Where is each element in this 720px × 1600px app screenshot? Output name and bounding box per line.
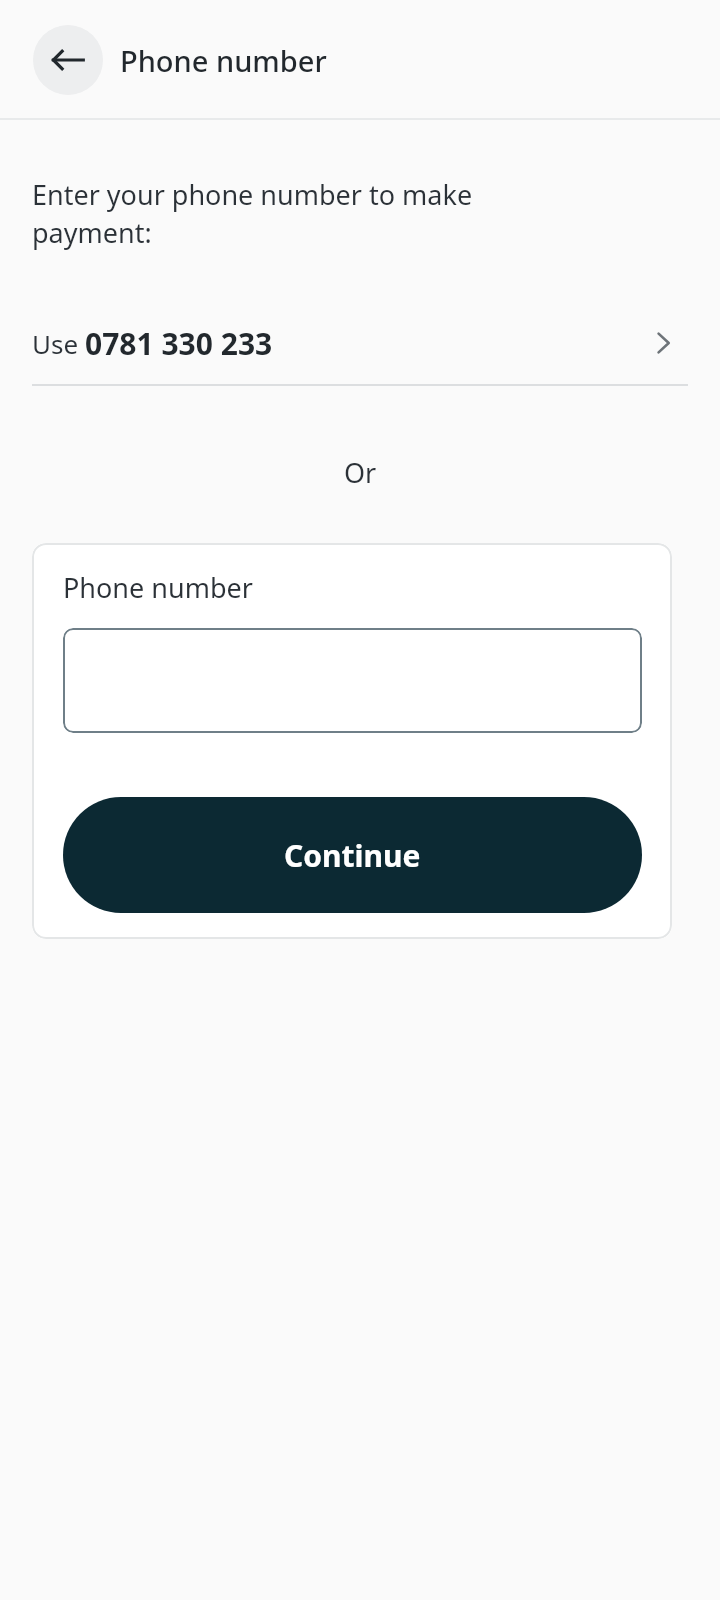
staticText: Or	[0, 454, 720, 491]
button[interactable]: Continue	[63, 797, 642, 913]
button[interactable]	[63, 628, 642, 733]
staticText: Enter your phone number to make payment:	[32, 176, 473, 251]
staticText: 0781 330 233	[85, 323, 273, 364]
button[interactable]: Back	[33, 25, 103, 95]
staticText: Phone number	[120, 41, 327, 80]
staticText: Phone number	[63, 569, 253, 606]
staticText: Use	[32, 326, 85, 361]
staticText: Continue	[284, 835, 421, 876]
button[interactable]: Use	[0, 313, 720, 386]
